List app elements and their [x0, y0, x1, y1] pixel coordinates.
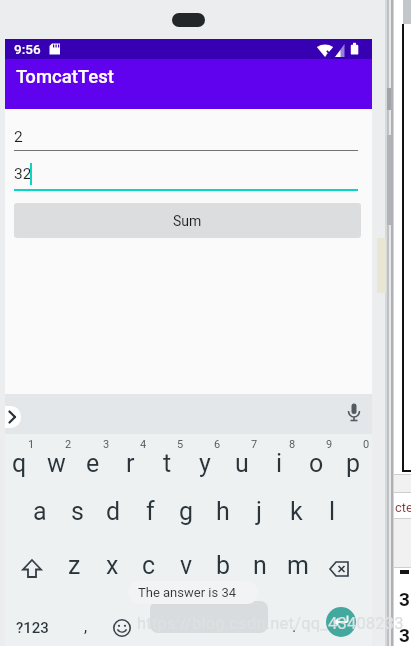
staticText: r	[126, 449, 135, 478]
staticText: b	[216, 551, 231, 580]
button[interactable]	[13, 548, 51, 590]
button[interactable]: c	[119, 543, 179, 587]
staticText: h	[216, 497, 230, 526]
button[interactable]: g	[156, 489, 216, 533]
button[interactable]: d	[83, 489, 143, 533]
button[interactable]: q	[0, 441, 49, 485]
staticText: https://blog.csdn.net/qq_43408233	[137, 614, 404, 633]
button[interactable]: n	[230, 543, 290, 587]
staticText: k	[290, 497, 303, 526]
staticText: a	[33, 497, 47, 526]
button[interactable]: h	[193, 489, 253, 533]
staticText: j	[256, 497, 262, 526]
staticText: w	[47, 449, 66, 478]
button[interactable]	[104, 604, 140, 644]
staticText: q	[12, 449, 27, 478]
staticText: v	[180, 551, 193, 580]
button[interactable]: 8	[262, 422, 322, 466]
button[interactable]: 5	[150, 422, 210, 466]
staticText: 2	[65, 438, 72, 451]
button[interactable]	[326, 607, 356, 637]
staticText: z	[68, 551, 81, 580]
staticText: 9	[326, 438, 333, 451]
button[interactable]: 1	[1, 422, 61, 466]
button[interactable]: j	[229, 489, 289, 533]
button[interactable]: r	[100, 441, 160, 485]
staticText: m	[287, 551, 309, 580]
staticText: 3	[399, 624, 410, 646]
button[interactable]: 7	[224, 422, 284, 466]
button[interactable]	[341, 399, 367, 427]
staticText: 6	[214, 438, 221, 451]
button[interactable]: u	[212, 441, 272, 485]
button[interactable]: 4	[113, 422, 173, 466]
button[interactable]: b	[193, 543, 253, 587]
staticText: ,	[84, 617, 88, 636]
staticText: s	[71, 497, 84, 526]
staticText: d	[106, 497, 121, 526]
button[interactable]: Sum	[14, 203, 361, 238]
staticText: 3	[399, 588, 410, 610]
button[interactable]: l	[302, 489, 362, 533]
button[interactable]: 2	[38, 422, 98, 466]
button[interactable]: o	[286, 441, 346, 485]
staticText: l	[329, 497, 336, 526]
button[interactable]: ?123	[2, 606, 62, 646]
staticText: .	[292, 617, 297, 636]
button[interactable]: t	[137, 441, 197, 485]
button[interactable]: s	[47, 489, 107, 533]
staticText: i	[276, 449, 283, 478]
staticText: 1	[28, 438, 35, 451]
staticText: 2	[14, 128, 23, 146]
staticText: p	[346, 449, 361, 478]
button[interactable]: w	[26, 441, 86, 485]
staticText: y	[199, 449, 211, 478]
staticText: 4	[140, 438, 147, 451]
button[interactable]: z	[44, 543, 104, 587]
button[interactable]	[0, 406, 21, 428]
button[interactable]: i	[249, 441, 309, 485]
button[interactable]: p	[323, 441, 383, 485]
staticText: g	[179, 497, 194, 526]
staticText: ?123	[16, 619, 49, 637]
staticText: cte	[395, 500, 411, 515]
button[interactable]: m	[268, 543, 328, 587]
staticText: n	[253, 551, 267, 580]
button[interactable]: 9	[299, 422, 359, 466]
staticText: The answer is 34	[138, 585, 236, 600]
button[interactable]: v	[156, 543, 216, 587]
staticText: 9:56	[14, 41, 41, 57]
staticText: 32	[14, 165, 32, 183]
button[interactable]	[150, 601, 268, 633]
button[interactable]: y	[175, 441, 235, 485]
staticText: TomcatTest	[16, 66, 114, 88]
button[interactable]: a	[10, 489, 70, 533]
staticText: 7	[251, 438, 258, 451]
button[interactable]: 3	[76, 422, 136, 466]
staticText: e	[86, 449, 100, 478]
button[interactable]: f	[120, 489, 180, 533]
staticText: f	[146, 497, 155, 526]
button[interactable]: .	[264, 604, 324, 646]
staticText: 8	[289, 438, 296, 451]
staticText: Sum	[173, 213, 202, 229]
staticText: c	[142, 551, 156, 580]
button[interactable]: e	[63, 441, 123, 485]
button[interactable]: 0	[336, 422, 396, 466]
staticText: 5	[177, 438, 184, 451]
button[interactable]: x	[82, 543, 142, 587]
staticText: u	[235, 449, 249, 478]
button[interactable]	[321, 548, 359, 590]
staticText: o	[309, 449, 324, 478]
button[interactable]: k	[266, 489, 326, 533]
staticText: x	[106, 551, 119, 580]
staticText: t	[163, 449, 172, 478]
staticText: 0	[363, 438, 370, 451]
button[interactable]: 6	[187, 422, 247, 466]
button[interactable]: ,	[56, 604, 116, 646]
staticText: 3	[103, 438, 110, 451]
